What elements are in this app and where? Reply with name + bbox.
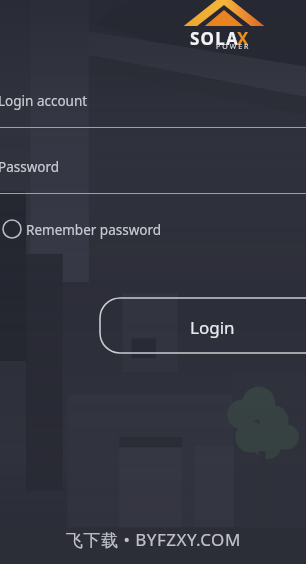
staticText: Login account (0, 92, 88, 110)
staticText: Remember password (26, 221, 162, 239)
staticText: X (237, 27, 249, 50)
staticText: Login (190, 316, 235, 339)
staticText: SOLA (190, 27, 239, 50)
button[interactable]: Login (99, 297, 306, 354)
button[interactable]: Login account (0, 83, 306, 128)
staticText: POWER (216, 42, 251, 52)
staticText: Password (0, 158, 60, 176)
button[interactable]: Remember password (0, 215, 180, 243)
button[interactable]: Password (0, 150, 306, 193)
staticText: 飞下载 • BYFZXY.COM (66, 528, 241, 551)
